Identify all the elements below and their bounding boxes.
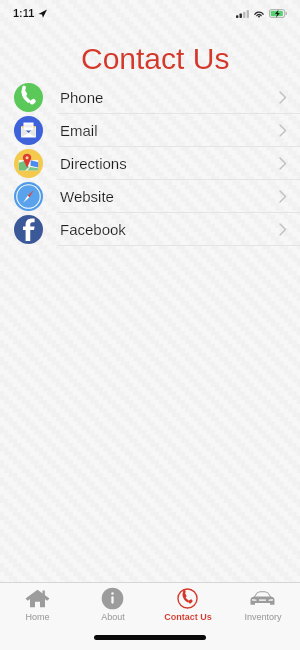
other: About [100, 588, 125, 609]
button[interactable]: Email [0, 114, 300, 147]
button[interactable]: Contact Us [150, 583, 225, 624]
staticText: Facebook [60, 221, 126, 238]
staticText: Phone [60, 89, 104, 106]
staticText: Contact Us [164, 612, 212, 622]
staticText: Inventory [244, 612, 282, 622]
button[interactable]: About [75, 583, 150, 624]
staticText: Directions [60, 155, 127, 172]
staticText: Website [60, 188, 114, 205]
staticText: Home [25, 612, 50, 622]
button[interactable]: Directions [0, 147, 300, 180]
other: Inventory [250, 588, 275, 609]
other: Contact Us [175, 588, 200, 609]
staticText: Email [60, 122, 98, 139]
staticText: About [101, 612, 125, 622]
button[interactable]: Facebook [0, 213, 300, 246]
button[interactable]: Home [0, 583, 75, 624]
other: Home [25, 588, 50, 609]
button[interactable]: Inventory [225, 583, 300, 624]
button[interactable]: Phone [0, 81, 300, 114]
staticText: Contact Us [81, 42, 230, 76]
button[interactable]: Website [0, 180, 300, 213]
staticText: 1:11 [13, 7, 35, 19]
